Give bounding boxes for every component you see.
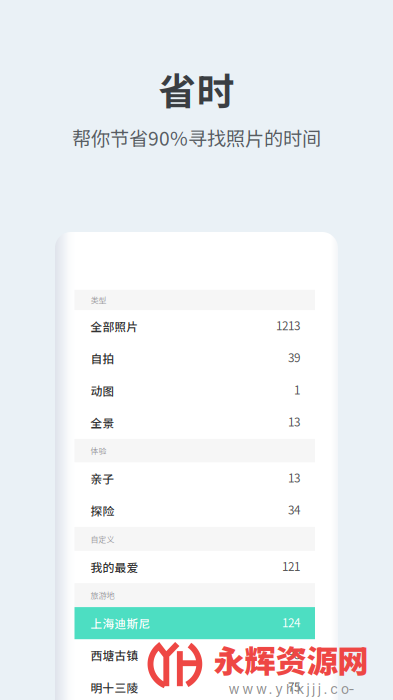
button[interactable]: 动图	[74, 374, 315, 406]
staticText: 旅游地	[90, 589, 114, 601]
staticText: 13	[288, 469, 300, 486]
staticText: 亲子	[90, 470, 114, 487]
staticText: 我的最爱	[90, 558, 138, 575]
staticText: 省时	[158, 62, 234, 116]
staticText: 永辉资源网	[213, 636, 368, 682]
button[interactable]: 明十三陵	[74, 671, 315, 700]
staticText: 动图	[90, 382, 114, 399]
button[interactable]: 我的最爱	[74, 551, 315, 583]
button[interactable]: 自拍	[74, 342, 315, 374]
staticText: 明十三陵	[90, 679, 138, 696]
staticText: 探险	[90, 502, 114, 519]
staticText: 体验	[90, 445, 106, 456]
staticText: www.yhkjjj.com	[228, 681, 364, 697]
staticText: 75	[288, 678, 300, 695]
staticText: 全景	[90, 414, 114, 431]
button[interactable]: 全景	[74, 406, 315, 438]
button[interactable]: 亲子	[74, 462, 315, 494]
staticText: 全部照片	[90, 318, 138, 335]
button[interactable]: 探险	[74, 494, 315, 526]
staticText: 1	[294, 381, 300, 398]
staticText: 上海迪斯尼	[90, 615, 150, 632]
staticText: 124	[282, 614, 300, 631]
staticText: 类型	[90, 294, 106, 306]
staticText: 13	[288, 413, 300, 430]
staticText: 西塘古镇	[90, 647, 138, 664]
button[interactable]: 上海迪斯尼	[74, 607, 315, 639]
button[interactable]: 全部照片	[74, 310, 315, 342]
staticText: 帮你节省90%寻找照片的时间	[72, 124, 321, 151]
staticText: 自拍	[90, 350, 114, 367]
staticText: 1213	[276, 317, 300, 334]
staticText: 34	[288, 501, 300, 518]
staticText: 39	[288, 349, 300, 366]
staticText: 自定义	[90, 533, 114, 545]
button[interactable]: 西塘古镇	[74, 639, 315, 671]
staticText: 121	[282, 557, 300, 574]
staticText: 98	[288, 646, 300, 663]
